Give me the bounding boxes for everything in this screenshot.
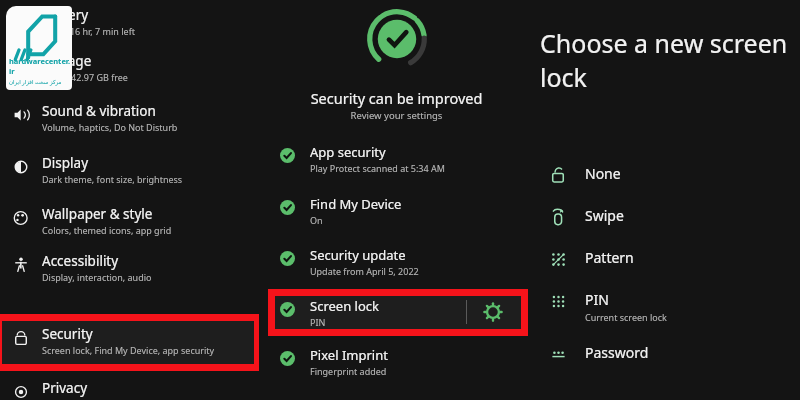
- button[interactable]: Privacy: [0, 377, 265, 400]
- button[interactable]: Pixel Imprint: [265, 345, 528, 385]
- staticText: Update from April 5, 2022: [310, 265, 419, 277]
- staticText: Password: [585, 343, 649, 362]
- button[interactable]: Accessibility: [0, 250, 265, 294]
- staticText: Screen lock: [310, 297, 379, 315]
- button[interactable]: Screen lock settings: [484, 303, 502, 321]
- staticText: Volume, haptics, Do Not Disturb: [42, 121, 178, 133]
- staticText: Storage: [42, 52, 92, 70]
- button[interactable]: None: [528, 164, 800, 204]
- button[interactable]: Sound & vibration: [0, 100, 265, 144]
- button[interactable]: Wallpaper & style: [0, 203, 265, 247]
- staticText: PIN: [310, 316, 326, 328]
- staticText: Display, interaction, audio: [42, 271, 152, 283]
- staticText: Find My Device: [310, 195, 402, 213]
- button[interactable]: PIN: [528, 290, 800, 330]
- button[interactable]: Find My Device: [265, 194, 528, 234]
- button[interactable]: Swipe: [528, 206, 800, 246]
- staticText: Security: [42, 325, 93, 343]
- staticText: Security can be improved: [265, 88, 528, 108]
- staticText: Fingerprint added: [310, 365, 387, 377]
- staticText: PIN: [585, 290, 609, 309]
- staticText: Security update: [310, 246, 406, 264]
- staticText: Choose a new screen lock: [540, 26, 798, 94]
- staticText: On: [310, 214, 323, 226]
- staticText: Privacy: [42, 379, 88, 397]
- button[interactable]: Battery: [0, 4, 265, 48]
- staticText: About 16 hr, 7 min left: [42, 25, 135, 37]
- staticText: Swipe: [585, 206, 624, 225]
- staticText: Sound & vibration: [42, 102, 156, 120]
- button[interactable]: Display: [0, 152, 265, 196]
- button[interactable]: App security: [265, 142, 528, 182]
- staticText: Battery: [42, 6, 89, 24]
- button[interactable]: Password: [528, 343, 800, 383]
- button[interactable]: Security update: [265, 245, 528, 285]
- staticText: Pattern: [585, 248, 634, 267]
- button[interactable]: Pattern: [528, 248, 800, 288]
- staticText: Current screen lock: [585, 311, 667, 323]
- staticText: Display: [42, 154, 89, 172]
- staticText: Dark theme, font size, brightness: [42, 173, 183, 185]
- staticText: Accessibility: [42, 252, 119, 270]
- staticText: Used - 42.97 GB free: [42, 71, 128, 83]
- staticText: None: [585, 164, 621, 183]
- staticText: Play Protect scanned at 5:34 AM: [310, 162, 445, 174]
- button[interactable]: Screen lock: [265, 296, 528, 336]
- staticText: مرکز سخت افزار ایران: [9, 78, 62, 85]
- staticText: App security: [310, 143, 386, 161]
- button[interactable]: Security: [0, 323, 265, 367]
- staticText: Wallpaper & style: [42, 205, 153, 223]
- staticText: hardwarecenter.ir: [9, 56, 72, 76]
- staticText: Pixel Imprint: [310, 346, 388, 364]
- staticText: Screen lock, Find My Device, app securit…: [42, 344, 215, 356]
- staticText: Review your settings: [265, 109, 528, 122]
- staticText: Colors, themed icons, app grid: [42, 224, 172, 236]
- button[interactable]: Storage: [0, 50, 265, 94]
